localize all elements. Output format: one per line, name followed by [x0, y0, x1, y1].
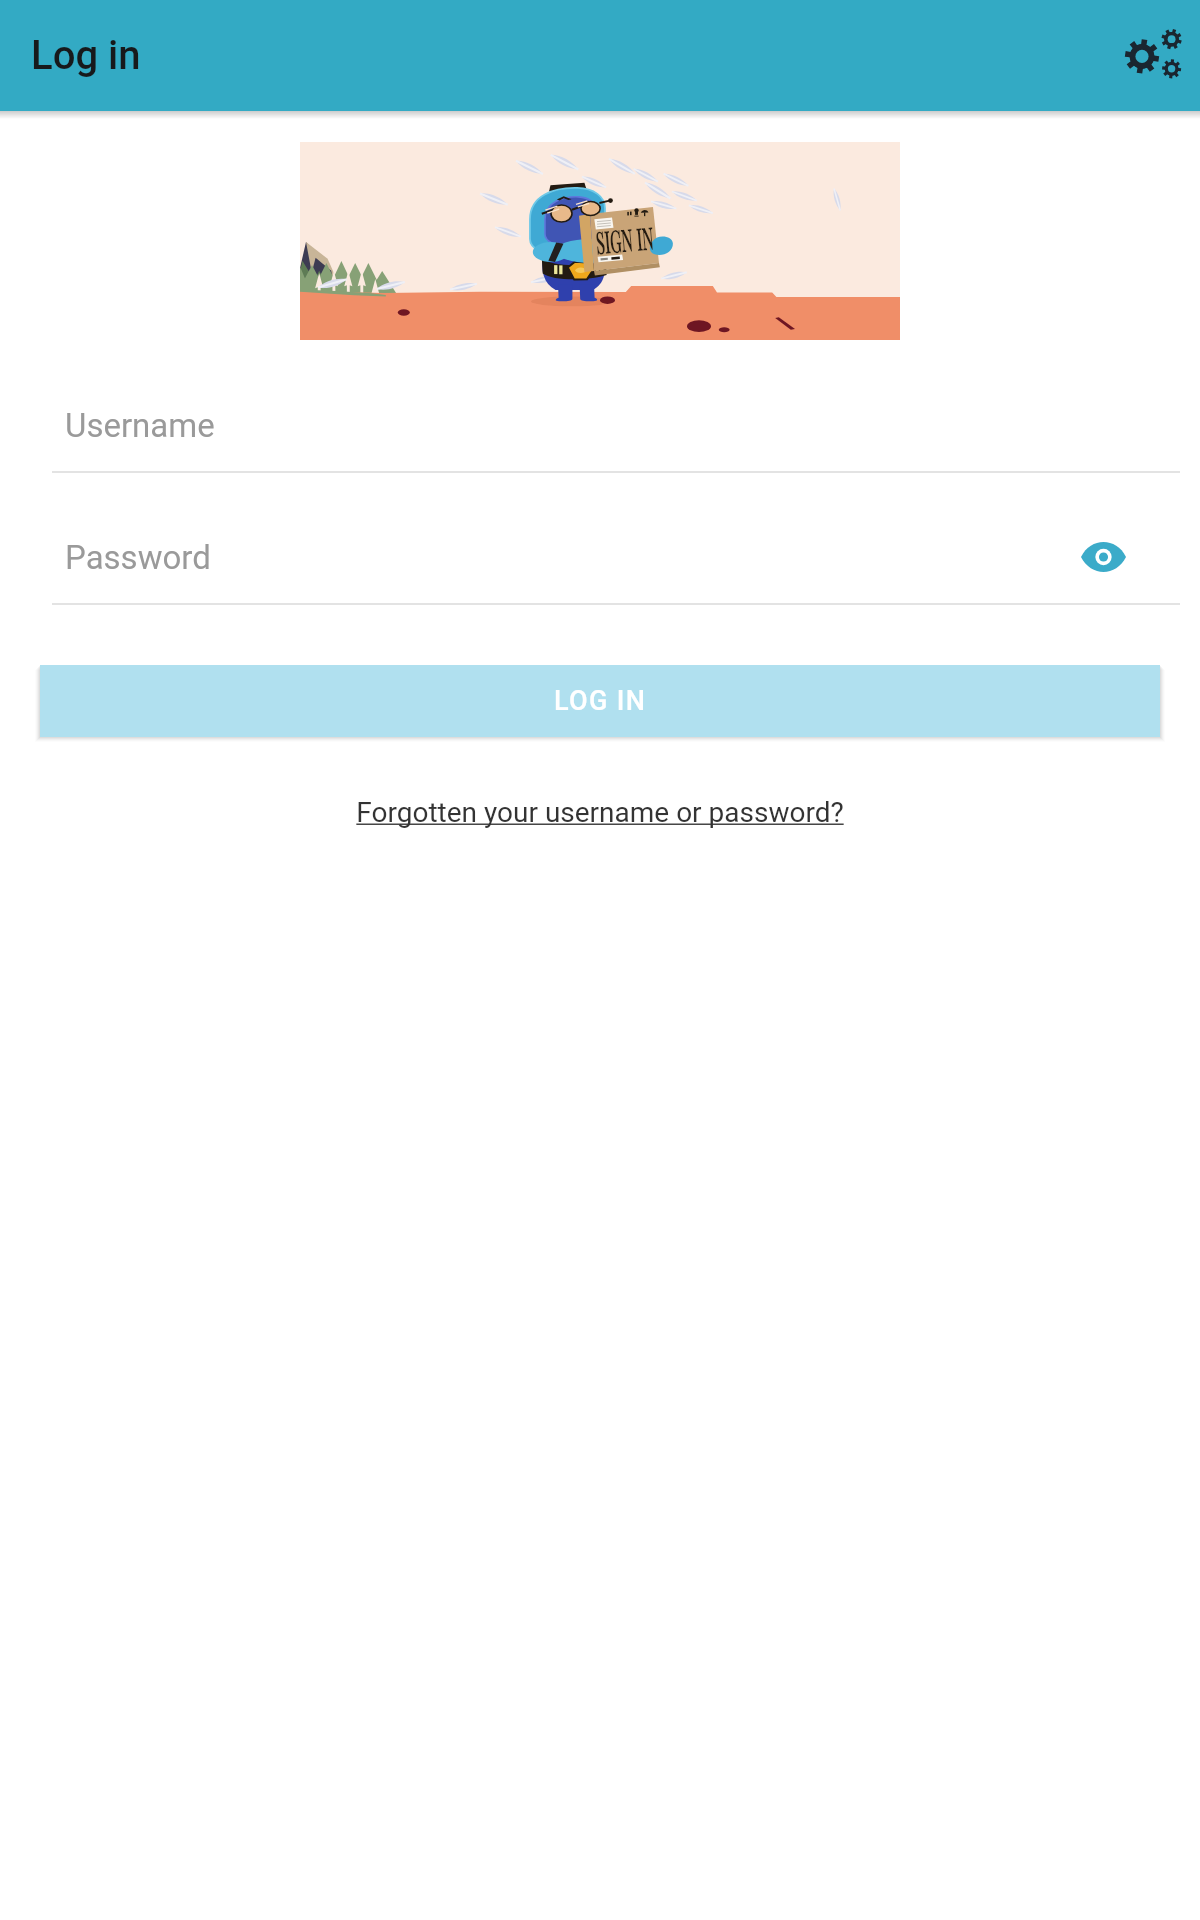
button[interactable]: Forgotten your username or password? — [0, 796, 1200, 829]
staticText: Password — [65, 538, 211, 577]
staticText: Forgotten your username or password? — [356, 796, 844, 829]
staticText: SIGN IN — [594, 217, 656, 262]
staticText: LOG IN — [554, 685, 647, 717]
button[interactable]: Settings — [1112, 16, 1192, 96]
staticText: Log in — [31, 32, 141, 79]
button[interactable]: Show password — [1070, 524, 1136, 590]
staticText: Username — [65, 406, 215, 445]
button[interactable]: LOG IN — [40, 665, 1160, 737]
